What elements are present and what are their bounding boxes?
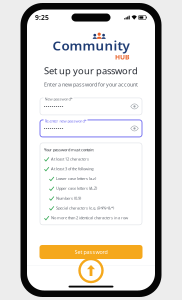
staticText: 9:25 xyxy=(35,13,49,22)
staticText: Community xyxy=(52,36,129,54)
staticText: •••••••••• xyxy=(43,103,63,110)
staticText: At least 3 of the following: xyxy=(51,166,94,171)
staticText: Numbers (0-9) xyxy=(56,195,81,201)
staticText: Set password xyxy=(74,248,107,256)
staticText: Set up your password xyxy=(44,64,138,77)
staticText: Upper case letters (A-Z) xyxy=(56,186,97,191)
staticText: Re-enter new password* xyxy=(44,118,86,123)
staticText: Your password must contain: xyxy=(44,147,94,152)
staticText: Special characters (e.g. @$%^&*) xyxy=(56,205,114,210)
button[interactable]: Set password xyxy=(39,245,142,259)
staticText: •••••••••• xyxy=(43,125,63,132)
staticText: Enter a new password for your account xyxy=(44,81,138,88)
staticText: At least 12 characters xyxy=(51,156,89,161)
staticText: No more than 2 identical characters in a… xyxy=(51,215,128,220)
staticText: New password* xyxy=(44,96,72,101)
staticText: HUB xyxy=(115,53,129,61)
staticText: Lower case letters (a-z) xyxy=(56,176,96,181)
button[interactable]: Scroll to top xyxy=(78,257,104,283)
